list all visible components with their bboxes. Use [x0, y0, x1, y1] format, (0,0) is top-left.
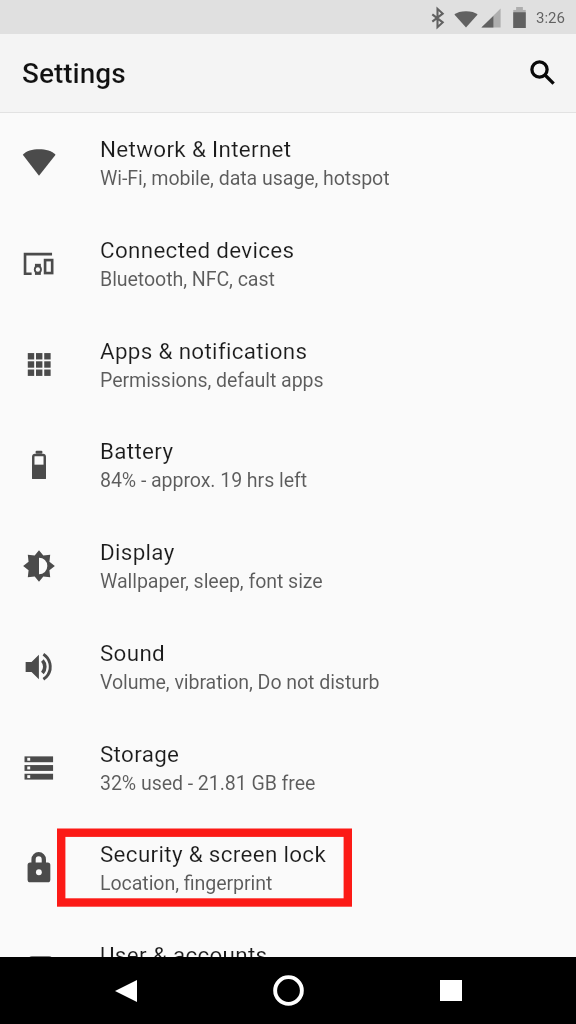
staticText: 32% used - 21.81 GB free	[100, 772, 316, 795]
button[interactable]: Security & screen lock	[0, 817, 576, 918]
staticText: User & accounts	[100, 942, 268, 968]
staticText: Current user: Owner	[100, 973, 272, 996]
staticText: Network & Internet	[100, 136, 292, 162]
staticText: Wallpaper, sleep, font size	[100, 570, 323, 593]
staticText: 84% - approx. 19 hrs left	[100, 469, 308, 492]
staticText: Location, fingerprint	[100, 872, 273, 895]
button[interactable]: Battery	[0, 414, 576, 515]
staticText: Volume, vibration, Do not disturb	[100, 671, 380, 694]
staticText: Storage	[100, 741, 180, 767]
staticText: Battery	[100, 438, 174, 464]
button[interactable]: Storage	[0, 717, 576, 818]
staticText: Sound	[100, 640, 166, 666]
button[interactable]: Recent apps	[415, 957, 482, 1024]
button[interactable]: Display	[0, 515, 576, 616]
button[interactable]: Connected devices	[0, 213, 576, 314]
staticText: Connected devices	[100, 237, 295, 263]
staticText: Display	[100, 539, 175, 565]
button[interactable]: User & accounts	[0, 918, 576, 1019]
button[interactable]: Back	[94, 957, 161, 1024]
staticText: Settings	[22, 57, 126, 90]
button[interactable]: Sound	[0, 616, 576, 717]
staticText: 3:26	[536, 9, 565, 27]
button[interactable]: Home	[255, 957, 322, 1024]
staticText: Permissions, default apps	[100, 369, 324, 392]
staticText: Wi-Fi, mobile, data usage, hotspot	[100, 167, 390, 190]
button[interactable]: Apps & notifications	[0, 314, 576, 415]
button[interactable]: Network & Internet	[0, 112, 576, 213]
button[interactable]: Search	[518, 49, 566, 97]
staticText: Bluetooth, NFC, cast	[100, 268, 275, 291]
staticText: Security & screen lock	[100, 841, 327, 867]
staticText: Apps & notifications	[100, 338, 308, 364]
